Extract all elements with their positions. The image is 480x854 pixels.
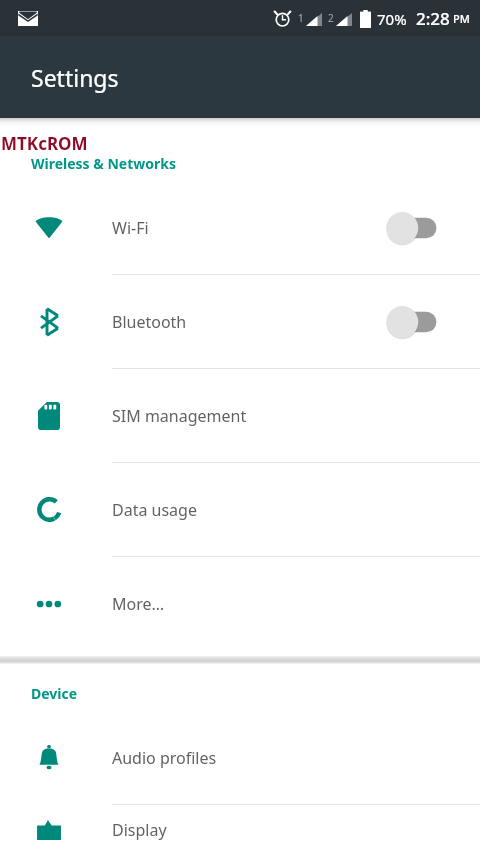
staticText: Data usage (112, 499, 480, 521)
staticText: 70% (377, 9, 407, 29)
button[interactable]: Audio profiles (0, 711, 480, 804)
staticText: Bluetooth (112, 311, 386, 333)
staticText: Device (31, 684, 78, 703)
staticText: Wi-Fi (112, 217, 386, 239)
other: SIM management (38, 402, 60, 430)
staticText: Display (112, 819, 480, 841)
other: More (36, 600, 62, 608)
other: Data usage (36, 496, 63, 523)
staticText: More… (112, 593, 480, 615)
button[interactable]: Toggle (386, 211, 438, 245)
other: Display (36, 819, 62, 841)
staticText: Wireless & Networks (31, 154, 176, 173)
button[interactable]: More (0, 557, 480, 650)
other: Audio profiles (37, 745, 61, 771)
button[interactable]: Toggle (386, 305, 438, 339)
button[interactable]: SIM management (0, 369, 480, 462)
other: Wi-Fi (35, 218, 63, 238)
button[interactable]: Data usage (0, 463, 480, 556)
staticText: Settings (31, 62, 119, 93)
staticText: PM (453, 11, 470, 26)
button[interactable]: Bluetooth (0, 275, 480, 368)
staticText: 1 (298, 11, 304, 25)
staticText: 2 (328, 11, 334, 25)
staticText: Audio profiles (112, 747, 480, 769)
staticText: MTKcROM (1, 132, 88, 155)
button[interactable]: Display (0, 805, 480, 854)
staticText: 2:28 (416, 7, 450, 30)
other: Bluetooth (39, 308, 59, 336)
button[interactable]: Wi-Fi (0, 181, 480, 274)
staticText: SIM management (112, 405, 480, 427)
